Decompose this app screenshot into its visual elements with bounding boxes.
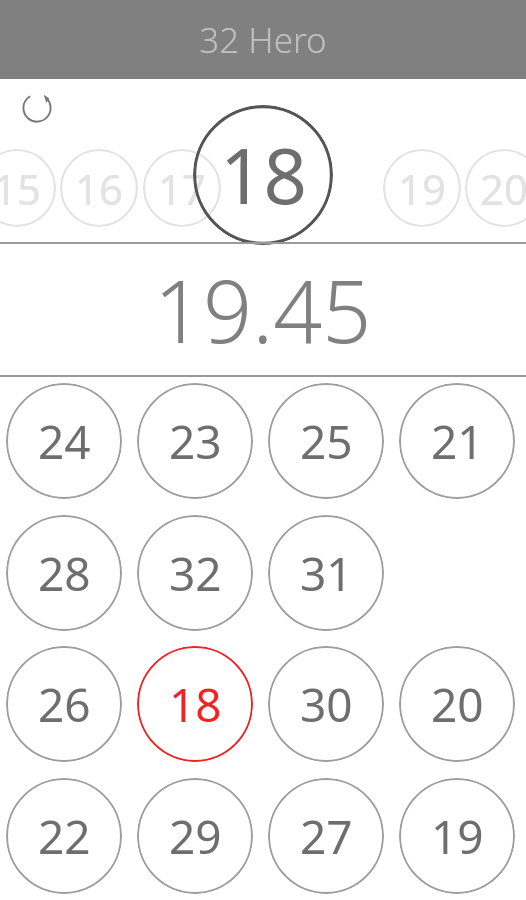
staticText: 25	[300, 410, 353, 473]
staticText: 23	[169, 410, 222, 473]
button[interactable]: 32 Hero	[0, 0, 526, 79]
button[interactable]: 31	[268, 515, 384, 631]
button[interactable]: 21	[399, 383, 515, 499]
button[interactable]: 20	[399, 646, 515, 762]
staticText: 32	[169, 542, 222, 605]
staticText: 16	[75, 160, 124, 217]
button[interactable]: 20	[465, 149, 526, 227]
staticText: 22	[38, 805, 91, 868]
button[interactable]: 24	[6, 383, 122, 499]
button[interactable]: 26	[6, 646, 122, 762]
staticText: 20	[431, 673, 484, 736]
staticText: 26	[38, 673, 91, 736]
staticText: 15	[0, 160, 42, 217]
button[interactable]: Refresh	[16, 87, 58, 129]
staticText: 17	[158, 160, 207, 217]
staticText: 30	[300, 673, 353, 736]
button[interactable]: 27	[268, 778, 384, 894]
button[interactable]: 30	[268, 646, 384, 762]
button[interactable]: 29	[137, 778, 253, 894]
button[interactable]: 19.45	[0, 244, 526, 375]
button[interactable]: 15	[0, 149, 56, 227]
button[interactable]: 32	[137, 515, 253, 631]
staticText: 18	[169, 673, 222, 736]
staticText: 24	[38, 410, 91, 473]
staticText: 20	[480, 160, 526, 217]
button[interactable]: 23	[137, 383, 253, 499]
button[interactable]: 17	[143, 149, 221, 227]
staticText: 19	[398, 160, 447, 217]
staticText: 29	[169, 805, 222, 868]
staticText: 31	[300, 542, 353, 605]
button[interactable]: 19	[383, 149, 461, 227]
staticText: 28	[38, 542, 91, 605]
staticText: 27	[300, 805, 353, 868]
button[interactable]: 16	[60, 149, 138, 227]
button[interactable]: 18	[137, 646, 253, 762]
button[interactable]: 22	[6, 778, 122, 894]
button[interactable]: 25	[268, 383, 384, 499]
button[interactable]: 19	[399, 778, 515, 894]
button[interactable]: 18	[193, 105, 333, 245]
button[interactable]: 28	[6, 515, 122, 631]
staticText: 18	[220, 123, 307, 227]
staticText: 19	[431, 805, 484, 868]
staticText: 19.45	[154, 251, 372, 368]
staticText: 32 Hero	[199, 16, 327, 64]
staticText: 21	[431, 410, 484, 473]
